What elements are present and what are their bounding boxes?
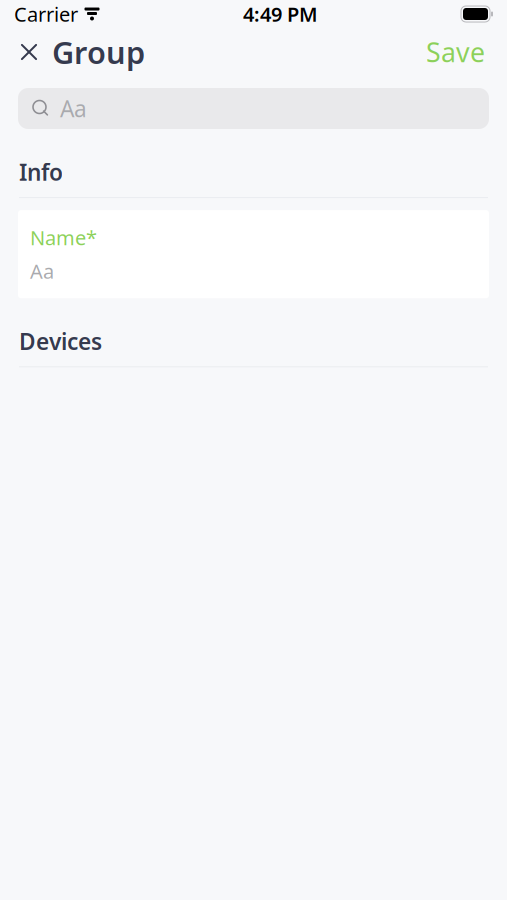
staticText: Aa <box>30 258 54 284</box>
staticText: 4:49 PM <box>243 1 318 27</box>
staticText: Save <box>426 34 485 70</box>
staticText: Info <box>19 157 63 187</box>
button[interactable]: Name field <box>18 210 489 298</box>
button[interactable]: Save <box>422 26 489 78</box>
button[interactable]: Search <box>18 88 489 129</box>
staticText: Carrier <box>14 1 78 27</box>
staticText: Group <box>52 32 145 72</box>
staticText: Devices <box>19 326 102 356</box>
staticText: Aa <box>60 93 87 123</box>
button[interactable]: Close <box>18 24 145 80</box>
staticText: Name* <box>30 224 97 251</box>
